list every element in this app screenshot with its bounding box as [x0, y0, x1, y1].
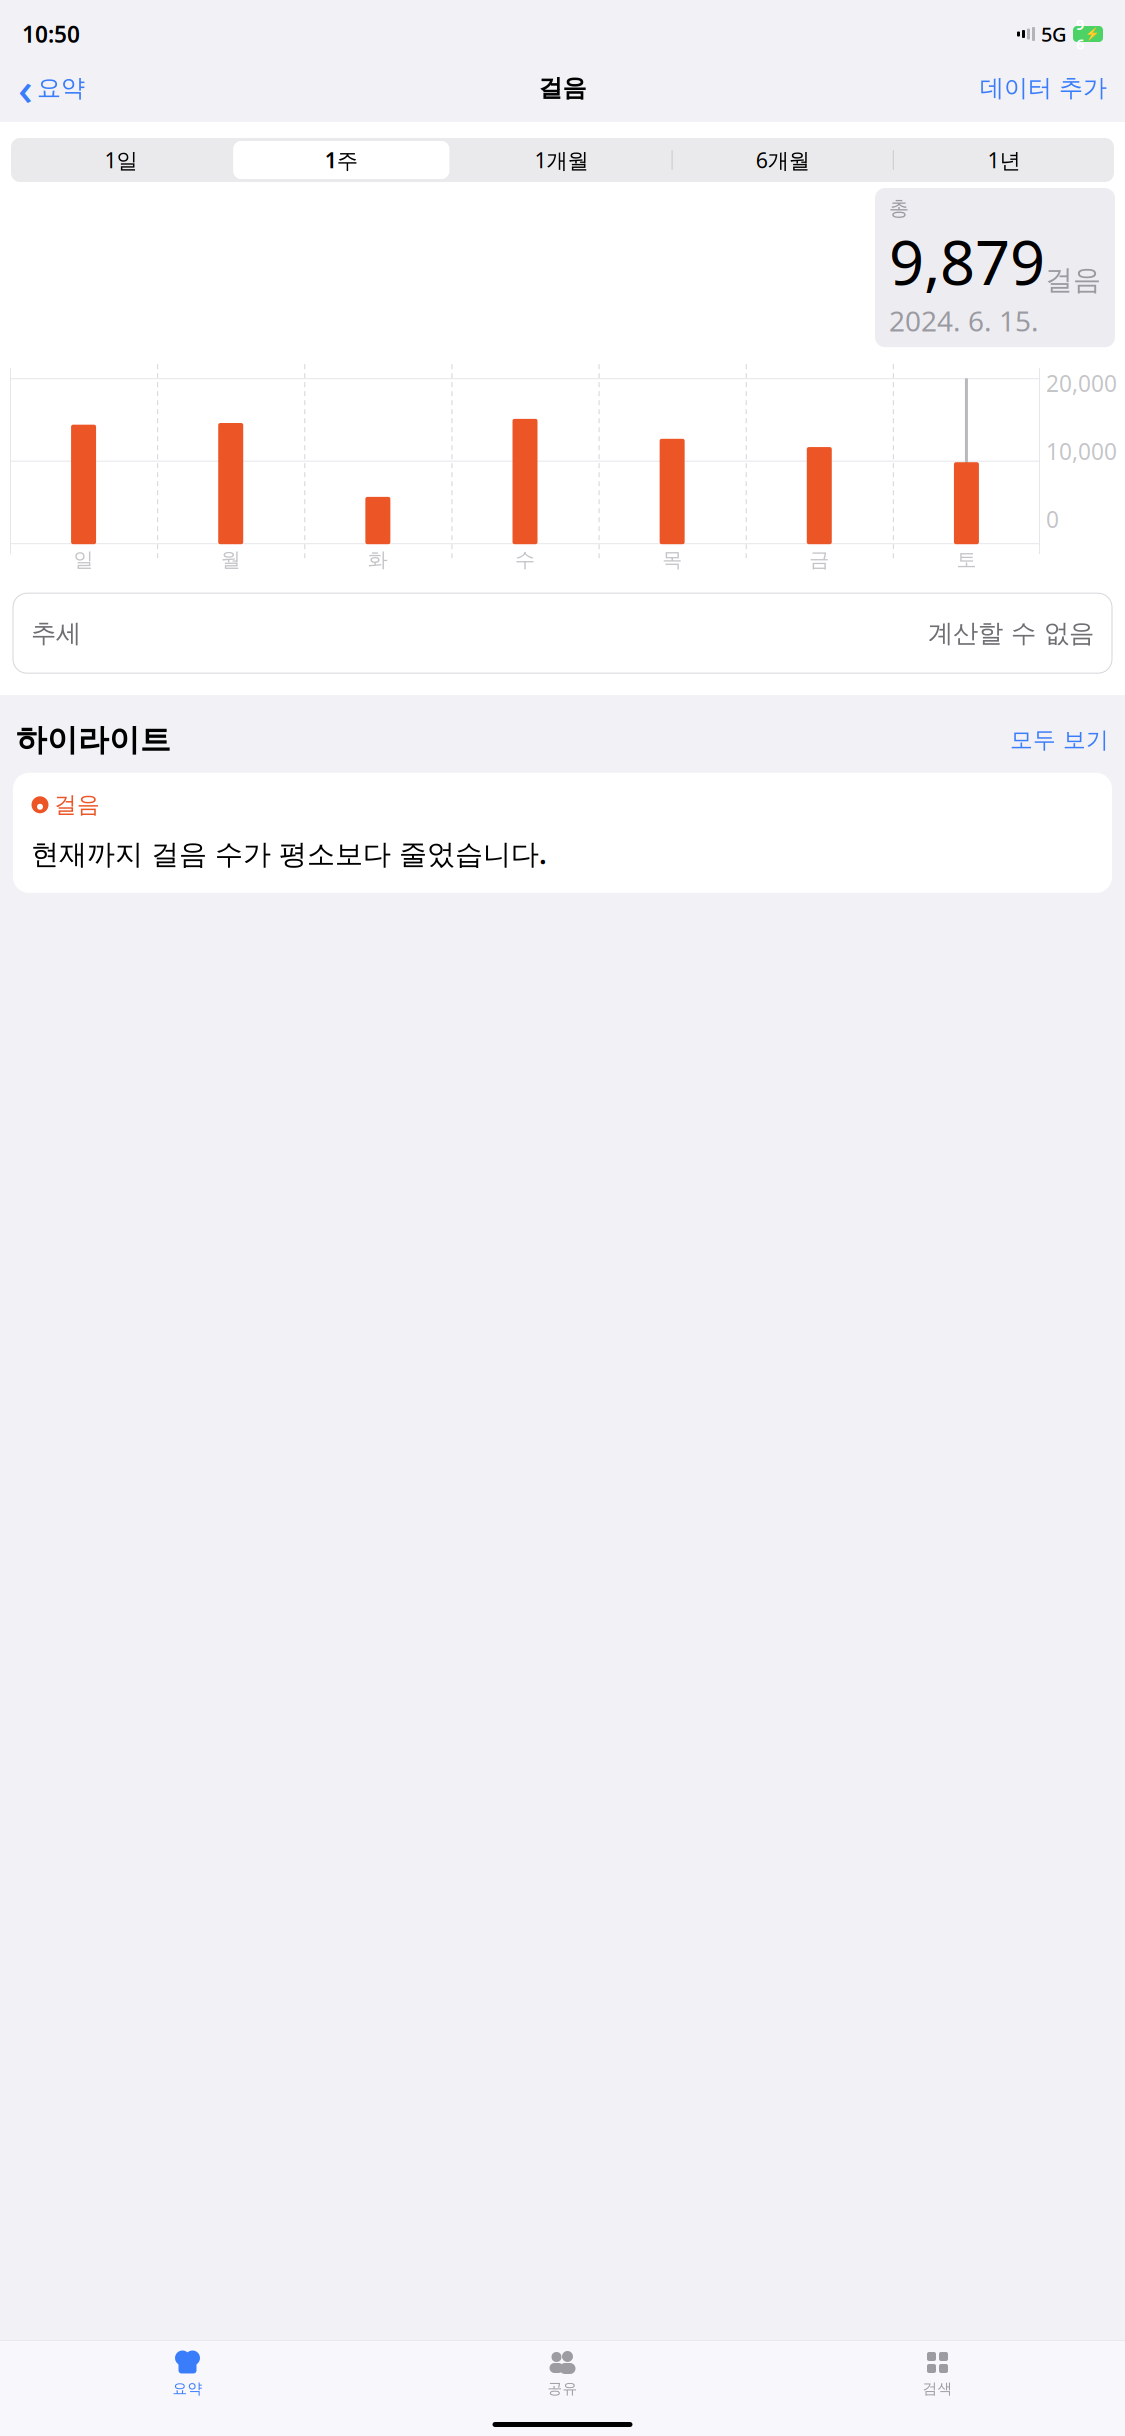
staticText: 토	[956, 548, 976, 572]
staticText: 하이라이트	[16, 721, 171, 759]
staticText: 1일	[105, 146, 138, 174]
button[interactable]: 6개월	[673, 138, 893, 182]
button[interactable]: ‹	[12, 52, 91, 124]
staticText: 0	[1046, 504, 1059, 534]
staticText: 1개월	[534, 146, 588, 174]
staticText: 금	[809, 548, 829, 572]
staticText: ⚡	[1085, 27, 1100, 41]
staticText: 모두 보기	[1010, 726, 1109, 754]
staticText: 10,000	[1046, 436, 1117, 466]
button[interactable]: 1년	[894, 138, 1114, 182]
staticText: 걸음	[1045, 263, 1101, 297]
staticText: 걸음	[54, 791, 100, 819]
staticText: 공유	[547, 2379, 577, 2397]
staticText: 10:50	[22, 19, 80, 49]
button[interactable]: 모두 보기	[1010, 726, 1109, 754]
staticText: 추세	[31, 618, 81, 649]
staticText: ‹	[18, 58, 33, 118]
staticText: 일	[74, 548, 94, 572]
button[interactable]: 1개월	[451, 138, 672, 182]
button[interactable]: 공유	[375, 2341, 750, 2397]
button[interactable]: 요약	[0, 2341, 375, 2397]
staticText: 데이터 추가	[980, 73, 1107, 103]
button[interactable]: 1일	[11, 138, 231, 182]
button[interactable]: 걸음	[13, 773, 1112, 893]
staticText: 2024. 6. 15.	[889, 302, 1039, 339]
button[interactable]: 추세	[13, 593, 1112, 673]
staticText: 현재까지 걸음 수가 평소보다 줄었습니다.	[31, 835, 547, 872]
staticText: 요약	[37, 73, 85, 103]
staticText: 20,000	[1046, 368, 1117, 398]
staticText: 96	[1076, 14, 1084, 53]
staticText: 화	[368, 548, 388, 572]
staticText: 1주	[325, 146, 358, 174]
staticText: 1년	[987, 146, 1020, 174]
staticText: 총	[889, 196, 909, 221]
staticText: 5G	[1041, 21, 1067, 47]
staticText: 요약	[172, 2379, 202, 2397]
staticText: 목	[662, 548, 682, 572]
staticText: 9,879	[889, 221, 1045, 302]
staticText: 수	[515, 548, 535, 572]
button[interactable]: 검색	[750, 2341, 1125, 2397]
staticText: 계산할 수 없음	[928, 618, 1094, 649]
staticText: 검색	[922, 2379, 952, 2397]
staticText: 걸음	[538, 73, 586, 103]
button[interactable]: 데이터 추가	[974, 67, 1113, 109]
staticText: 월	[221, 548, 241, 572]
button[interactable]: 1주	[231, 138, 451, 182]
staticText: 6개월	[756, 146, 810, 174]
